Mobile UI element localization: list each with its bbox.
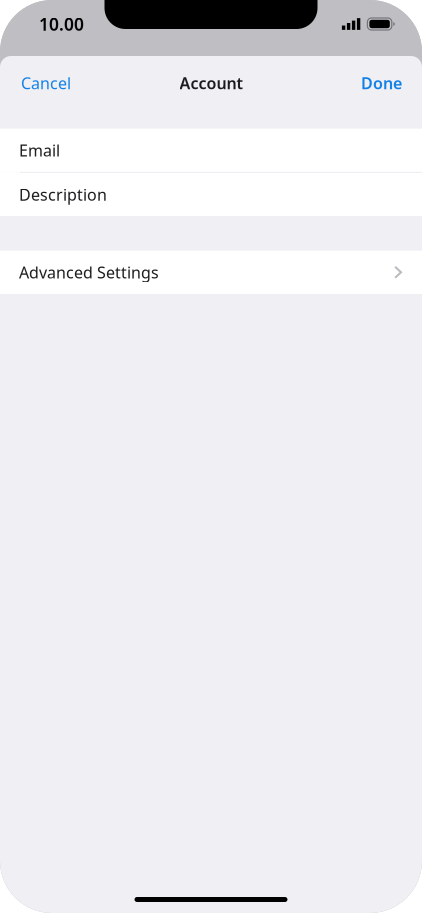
- staticText: 10.00: [39, 12, 84, 35]
- button[interactable]: Advanced Settings: [0, 251, 422, 294]
- staticText: Done: [361, 72, 402, 94]
- staticText: Description: [19, 184, 107, 205]
- button[interactable]: Done: [341, 61, 422, 105]
- button[interactable]: Description: [0, 173, 422, 216]
- button[interactable]: Email: [0, 129, 422, 172]
- staticText: Account: [179, 72, 242, 94]
- button[interactable]: Cancel: [0, 61, 92, 105]
- staticText: Advanced Settings: [19, 262, 159, 283]
- staticText: Cancel: [21, 72, 71, 94]
- staticText: Email: [19, 140, 60, 161]
